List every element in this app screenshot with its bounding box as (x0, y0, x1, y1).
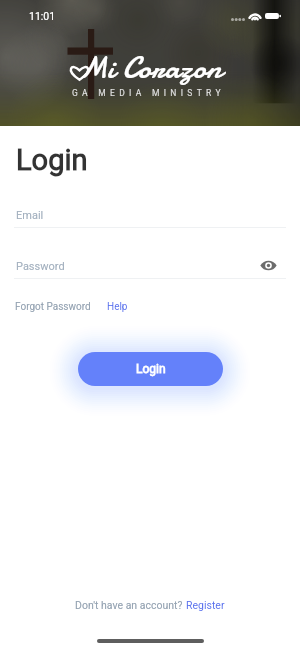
button[interactable]: Help (107, 301, 128, 313)
staticText: Login (136, 362, 166, 376)
staticText: 11:01 (29, 10, 56, 22)
staticText: GA MEDIA MINISTRY (72, 88, 225, 98)
button[interactable]: Don't have an account? (75, 599, 225, 611)
button[interactable]: Login (78, 352, 223, 386)
staticText: Password (16, 260, 65, 273)
button[interactable]: Show password (257, 254, 280, 277)
button[interactable]: Forgot Password (15, 301, 91, 313)
staticText: Login (16, 143, 88, 177)
staticText: Don't have an account? (75, 599, 186, 611)
staticText: Email (16, 209, 44, 222)
staticText: Mi Corazon (79, 46, 222, 90)
staticText: Register (186, 599, 225, 611)
